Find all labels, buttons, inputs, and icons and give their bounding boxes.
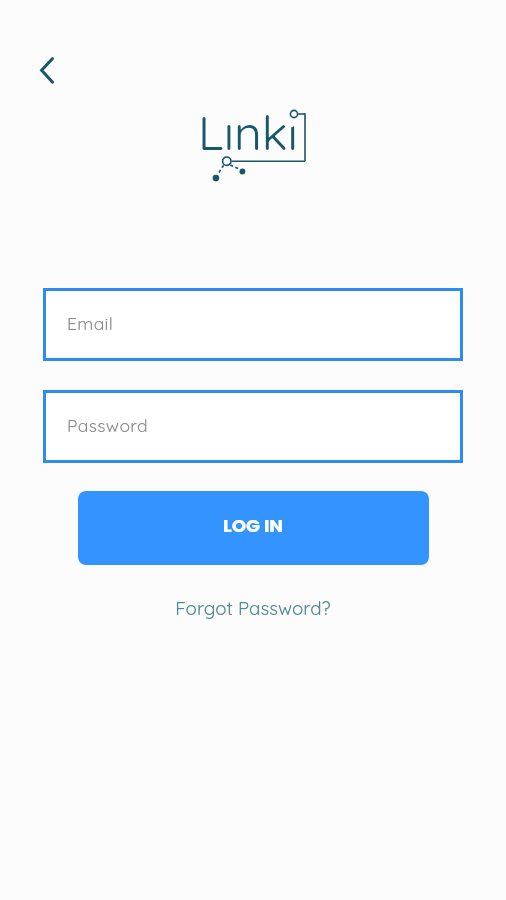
button[interactable]: LOG IN bbox=[78, 491, 429, 565]
button[interactable]: Back bbox=[22, 48, 70, 96]
staticText: Forgot Password? bbox=[175, 596, 331, 619]
staticText: Linki bbox=[198, 102, 298, 162]
staticText: LOG IN bbox=[223, 513, 284, 539]
staticText: Password bbox=[67, 414, 149, 436]
staticText: Email bbox=[67, 312, 114, 334]
button[interactable]: Forgot Password? bbox=[0, 596, 506, 628]
button[interactable]: Email bbox=[43, 288, 463, 361]
button[interactable]: Password bbox=[43, 390, 463, 463]
